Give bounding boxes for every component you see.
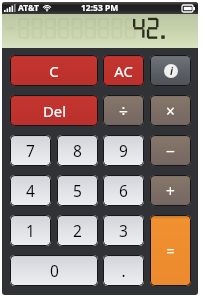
button[interactable]: C <box>10 55 98 86</box>
button[interactable]: × <box>150 95 191 126</box>
button[interactable]: 9 <box>103 135 144 166</box>
button[interactable]: 4 <box>10 175 51 206</box>
button[interactable]: AC <box>103 55 144 86</box>
button[interactable]: . <box>103 255 144 286</box>
staticText: 9 <box>119 140 128 161</box>
button[interactable]: 7 <box>10 135 51 166</box>
staticText: 6 <box>119 180 128 201</box>
staticText: Del <box>43 101 66 121</box>
staticText: C <box>49 61 59 81</box>
staticText: 5 <box>73 180 82 201</box>
button[interactable]: 8 <box>57 135 98 166</box>
staticText: − <box>166 140 175 161</box>
staticText: 0 <box>50 260 59 281</box>
staticText: × <box>166 100 175 121</box>
staticText: 4 <box>26 180 35 201</box>
staticText: AC <box>114 61 133 81</box>
button[interactable]: 1 <box>10 215 51 246</box>
button[interactable]: 3 <box>103 215 144 246</box>
staticText: ÷ <box>119 100 128 121</box>
button[interactable]: + <box>150 175 191 206</box>
button[interactable]: ÷ <box>103 95 144 126</box>
staticText: 1 <box>26 220 35 241</box>
staticText: . <box>121 260 126 281</box>
staticText: 7 <box>26 140 35 161</box>
staticText: 12:53 PM <box>81 2 119 14</box>
staticText: + <box>166 180 175 201</box>
staticText: i <box>170 64 173 78</box>
button[interactable]: 0 <box>10 255 98 286</box>
staticText: AT&T <box>18 2 39 14</box>
button[interactable]: 6 <box>103 175 144 206</box>
button[interactable]: Info <box>150 55 191 86</box>
button[interactable]: − <box>150 135 191 166</box>
button[interactable]: = <box>150 215 191 286</box>
button[interactable]: Del <box>10 95 98 126</box>
staticText: = <box>166 241 175 260</box>
button[interactable]: 5 <box>57 175 98 206</box>
button[interactable]: 2 <box>57 215 98 246</box>
staticText: 2 <box>73 220 82 241</box>
staticText: 3 <box>119 220 128 241</box>
staticText: 8 <box>73 140 82 161</box>
